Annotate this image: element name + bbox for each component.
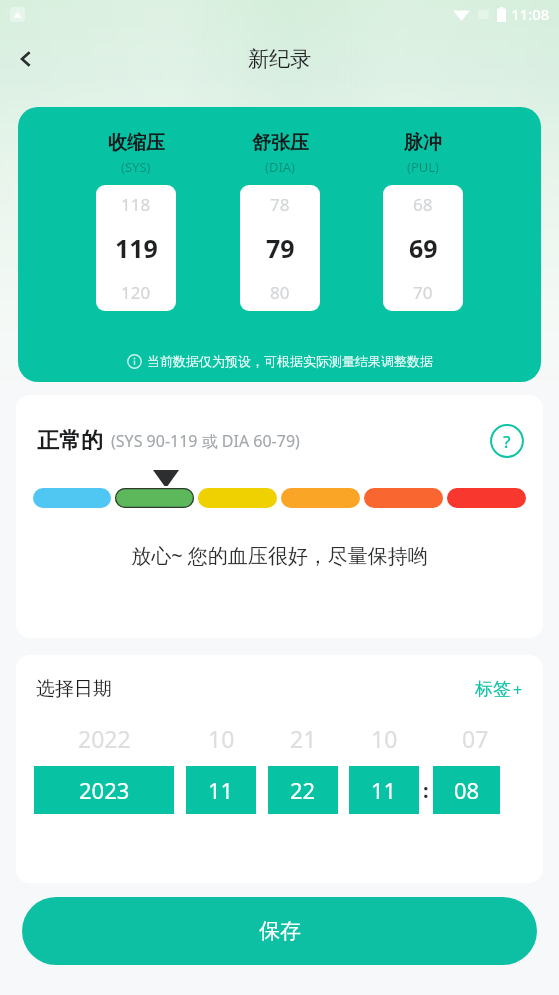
staticText: 放心~ 您的血压很好，尽量保持哟	[16, 542, 543, 569]
staticText: ?	[503, 430, 511, 453]
staticText: 70	[413, 281, 433, 304]
button[interactable]	[115, 488, 194, 508]
staticText: 保存	[259, 918, 301, 944]
staticText: (DIA)	[265, 158, 296, 176]
button[interactable]: Back	[0, 33, 52, 85]
staticText: 脉冲	[404, 131, 442, 155]
staticText: 11	[208, 775, 234, 805]
staticText: 22	[290, 775, 316, 805]
staticText: (PUL)	[407, 158, 439, 176]
staticText: 10	[208, 723, 235, 754]
staticText: 21	[290, 723, 317, 754]
staticText: 07	[462, 723, 489, 754]
staticText: 舒张压	[252, 131, 309, 155]
staticText: 79	[266, 231, 295, 265]
button[interactable]: 保存	[22, 897, 537, 965]
staticText: 2023	[79, 775, 130, 805]
button[interactable]	[281, 488, 360, 508]
button[interactable]: 68	[383, 185, 463, 311]
staticText: 118	[121, 193, 151, 216]
button[interactable]: 标签	[475, 678, 523, 701]
staticText: 2022	[78, 723, 131, 754]
button[interactable]: 118	[96, 185, 176, 311]
staticText: 当前数据仅为预设，可根据实际测量结果调整数据	[147, 353, 433, 369]
staticText: 收缩压	[108, 131, 165, 155]
button[interactable]	[364, 488, 443, 508]
staticText: 69	[409, 231, 438, 265]
button[interactable]	[198, 488, 277, 508]
staticText: (SYS 90-119 或 DIA 60-79)	[111, 430, 300, 452]
staticText: 08	[454, 775, 480, 805]
staticText: 119	[115, 231, 158, 265]
staticText: 120	[121, 281, 151, 304]
button[interactable]: 2023	[34, 766, 174, 814]
button[interactable]: 22	[268, 766, 338, 814]
staticText: 68	[413, 193, 433, 216]
staticText: 10	[371, 723, 398, 754]
staticText: 80	[270, 281, 290, 304]
button[interactable]: 11	[186, 766, 256, 814]
staticText: 正常的	[37, 427, 103, 455]
button[interactable]: 08	[433, 766, 500, 814]
staticText: (SYS)	[121, 158, 151, 176]
staticText: 选择日期	[36, 677, 112, 701]
staticText: :	[423, 777, 429, 804]
button[interactable]: 78	[240, 185, 320, 311]
staticText: +	[513, 679, 523, 701]
staticText: 标签	[475, 678, 511, 701]
staticText: 新纪录	[248, 46, 311, 72]
button[interactable]: Help	[490, 424, 524, 458]
staticText: 78	[270, 193, 290, 216]
button[interactable]	[33, 488, 111, 508]
staticText: 11:08	[511, 4, 550, 24]
button[interactable]: 11	[349, 766, 419, 814]
staticText: 11	[371, 775, 397, 805]
button[interactable]	[447, 488, 526, 508]
